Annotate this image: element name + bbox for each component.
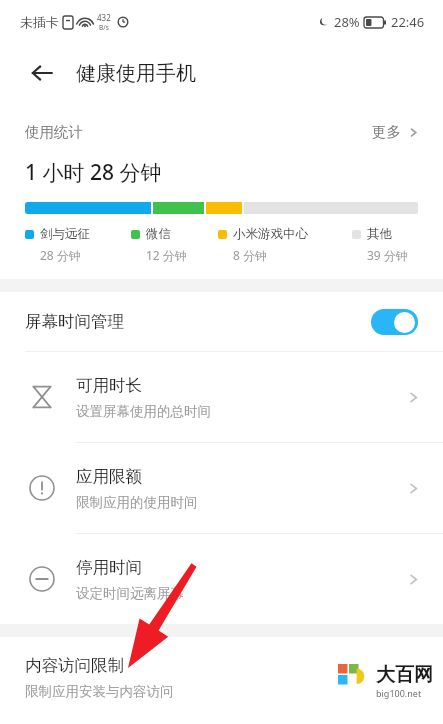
staticText: 28 分钟 (40, 247, 81, 263)
staticText: 22:46 (391, 13, 425, 31)
staticText: 未插卡 (20, 14, 59, 30)
button[interactable]: 停用时间 (0, 534, 443, 624)
staticText: 微信 (146, 226, 171, 242)
staticText: big100.net (376, 687, 422, 699)
staticText: 8 分钟 (233, 247, 267, 263)
staticText: 设置屏幕使用的总时间 (76, 403, 211, 420)
staticText: 28% (334, 13, 360, 31)
staticText: 大百网 (376, 663, 433, 687)
staticText: 限制应用的使用时间 (76, 494, 198, 511)
button[interactable]: Back (22, 53, 62, 93)
staticText: 健康使用手机 (76, 61, 196, 86)
staticText: 1 小时 28 分钟 (25, 158, 162, 187)
staticText: 更多 (372, 123, 401, 141)
button[interactable]: 使用统计 (0, 118, 443, 146)
staticText: 12 分钟 (146, 247, 187, 263)
staticText: 剑与远征 (40, 226, 90, 242)
staticText: 可用时长 (76, 375, 142, 396)
staticText: 432 (97, 12, 111, 23)
button[interactable]: 屏幕时间管理 (0, 292, 443, 351)
staticText: 屏幕时间管理 (25, 311, 124, 332)
staticText: 使用统计 (25, 123, 83, 141)
staticText: 应用限额 (76, 466, 142, 487)
button[interactable]: 可用时长 (0, 352, 443, 442)
button[interactable]: 屏幕时间管理 toggle (371, 309, 418, 335)
staticText: 其他 (367, 226, 392, 242)
button[interactable]: 应用限额 (0, 443, 443, 533)
staticText: B/s (99, 23, 109, 32)
staticText: 39 分钟 (367, 247, 408, 263)
button[interactable]: 内容访问限制 (0, 637, 443, 717)
staticText: 小米游戏中心 (233, 226, 308, 242)
staticText: 内容访问限制 (25, 655, 124, 676)
staticText: 设定时间远离屏幕 (76, 585, 184, 602)
staticText: 限制应用安装与内容访问 (25, 683, 174, 700)
staticText: 停用时间 (76, 557, 142, 578)
